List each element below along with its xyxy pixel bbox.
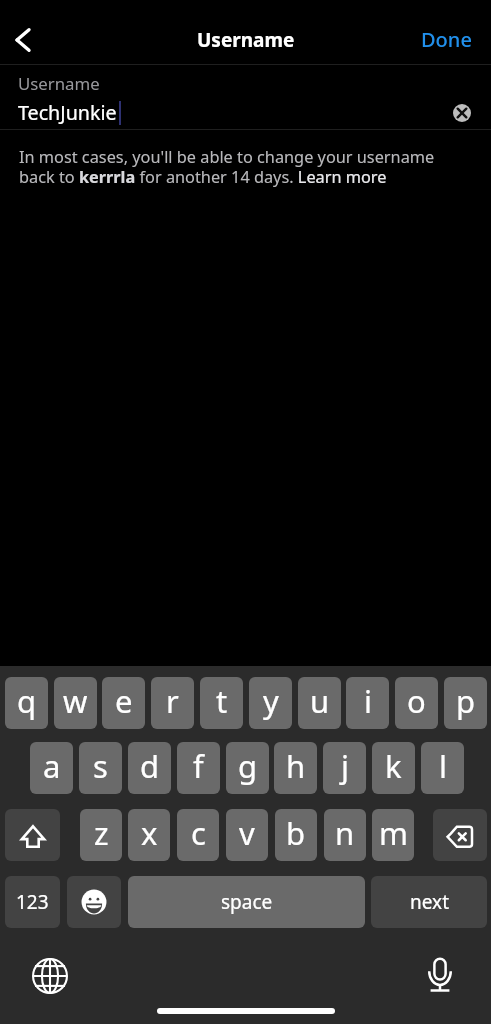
- button[interactable]: Clear text: [453, 104, 471, 122]
- staticText: c: [191, 812, 206, 854]
- button[interactable]: p: [444, 677, 487, 729]
- button[interactable]: t: [200, 677, 243, 729]
- button[interactable]: v: [226, 809, 268, 861]
- staticText: w: [63, 680, 88, 722]
- staticText: k: [385, 745, 402, 787]
- staticText: TechJunkie: [18, 99, 117, 126]
- button[interactable]: k: [372, 742, 415, 794]
- staticText: y: [263, 680, 279, 722]
- button[interactable]: z: [80, 809, 122, 861]
- button[interactable]: u: [298, 677, 341, 729]
- button[interactable]: l: [421, 742, 464, 794]
- button[interactable]: Done: [402, 16, 491, 63]
- button[interactable]: h: [274, 742, 317, 794]
- button[interactable]: Change keyboard: [28, 954, 72, 998]
- staticText: a: [43, 745, 61, 787]
- button[interactable]: Shift: [5, 809, 60, 861]
- button[interactable]: Back: [0, 18, 44, 62]
- button[interactable]: g: [226, 742, 269, 794]
- staticText: Username: [197, 27, 295, 53]
- staticText: i: [364, 680, 372, 722]
- staticText: e: [115, 680, 133, 722]
- button[interactable]: w: [54, 677, 97, 729]
- button[interactable]: m: [372, 809, 414, 861]
- button[interactable]: n: [324, 809, 366, 861]
- button[interactable]: j: [323, 742, 366, 794]
- staticText: r: [166, 680, 179, 722]
- staticText: v: [239, 812, 255, 854]
- button[interactable]: 123: [5, 876, 60, 928]
- staticText: d: [140, 745, 160, 787]
- button[interactable]: o: [395, 677, 438, 729]
- button[interactable]: r: [151, 677, 194, 729]
- staticText: Username: [18, 72, 100, 95]
- button[interactable]: next: [371, 876, 487, 928]
- staticText: q: [17, 680, 37, 722]
- staticText: s: [93, 745, 108, 787]
- staticText: 123: [16, 889, 49, 915]
- staticText: f: [193, 745, 204, 787]
- button[interactable]: a: [30, 742, 73, 794]
- button[interactable]: x: [128, 809, 170, 861]
- button[interactable]: s: [79, 742, 122, 794]
- button[interactable]: d: [128, 742, 171, 794]
- staticText: next: [410, 889, 449, 915]
- button[interactable]: i: [346, 677, 389, 729]
- staticText: z: [94, 812, 109, 854]
- staticText: Done: [421, 26, 472, 53]
- button[interactable]: Voice input: [418, 952, 462, 996]
- staticText: In most cases, you'll be able to change …: [19, 146, 471, 188]
- button[interactable]: f: [177, 742, 220, 794]
- button[interactable]: space: [128, 876, 365, 928]
- button[interactable]: e: [102, 677, 145, 729]
- staticText: t: [216, 680, 228, 722]
- button[interactable]: y: [249, 677, 292, 729]
- staticText: g: [238, 745, 258, 787]
- button[interactable]: Emoji: [67, 876, 121, 928]
- staticText: j: [341, 745, 349, 787]
- staticText: p: [456, 680, 476, 722]
- button[interactable]: Backspace: [433, 809, 487, 861]
- staticText: x: [141, 812, 158, 854]
- staticText: h: [286, 745, 306, 787]
- button[interactable]: c: [177, 809, 219, 861]
- staticText: l: [439, 745, 447, 787]
- staticText: n: [335, 812, 355, 854]
- staticText: b: [286, 812, 306, 854]
- staticText: o: [407, 680, 426, 722]
- staticText: m: [379, 812, 408, 854]
- staticText: space: [221, 889, 273, 915]
- button[interactable]: b: [275, 809, 317, 861]
- staticText: u: [310, 680, 330, 722]
- button[interactable]: q: [5, 677, 48, 729]
